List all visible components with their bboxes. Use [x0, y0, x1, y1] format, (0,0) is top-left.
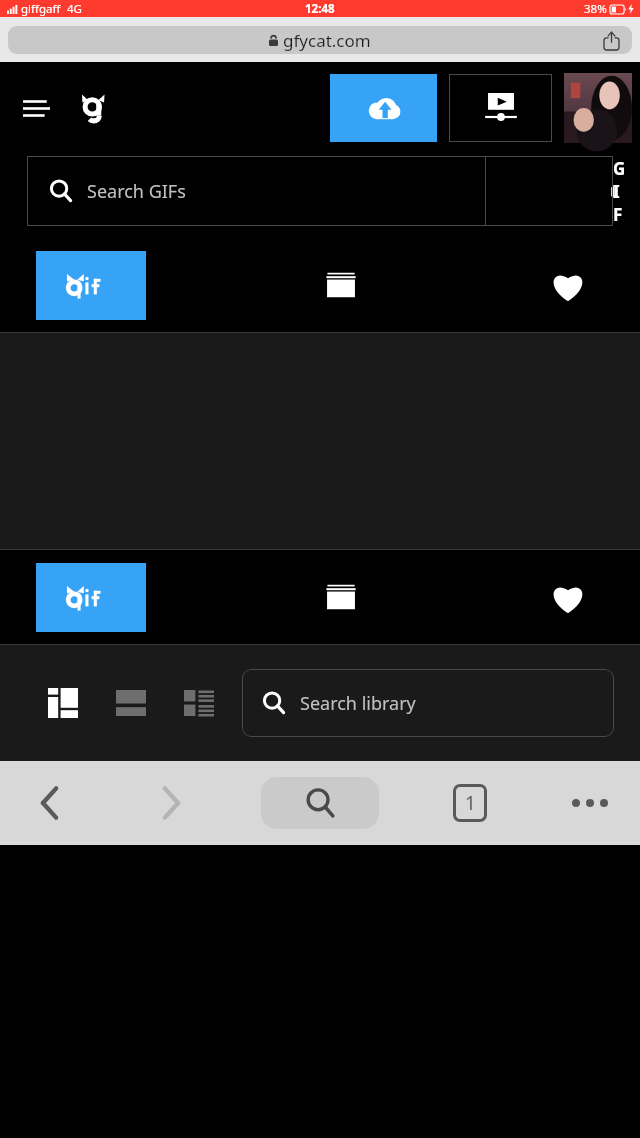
staticText: Search library — [300, 691, 416, 716]
button[interactable]: Create video — [449, 74, 552, 142]
button[interactable]: Save to collection — [309, 253, 373, 317]
button[interactable]: Search library — [242, 669, 614, 737]
button[interactable]: Menu — [17, 89, 55, 127]
staticText: 4G — [67, 1, 82, 17]
staticText: 1 — [465, 790, 476, 816]
button[interactable]: Tabs — [440, 773, 500, 833]
staticText: 38% — [584, 1, 607, 17]
staticText: 12:48 — [305, 1, 335, 17]
button[interactable]: Row view — [108, 680, 154, 726]
button[interactable]: gfycat.com — [8, 26, 632, 54]
button[interactable]: Share — [596, 25, 626, 55]
button[interactable]: Save to collection — [309, 565, 373, 629]
button[interactable]: Search GIFs — [27, 156, 613, 226]
button[interactable]: Like — [536, 253, 600, 317]
button[interactable]: Profile — [564, 73, 632, 143]
button[interactable]: Like — [536, 565, 600, 629]
staticText: gfycat.com — [283, 29, 371, 52]
staticText: Search GIFs — [87, 179, 186, 204]
button[interactable]: More — [560, 773, 620, 833]
button[interactable]: List view — [176, 680, 222, 726]
staticText: giffgaff — [21, 1, 61, 17]
button[interactable]: Search — [261, 777, 379, 829]
button[interactable]: Gfycat home — [73, 88, 113, 128]
button[interactable]: Upload — [330, 74, 437, 142]
button[interactable]: Back — [20, 773, 80, 833]
button[interactable]: GIF — [36, 563, 146, 632]
button[interactable]: Forward — [141, 773, 201, 833]
button[interactable]: Masonry view — [40, 680, 86, 726]
button[interactable]: GIF — [36, 251, 146, 320]
